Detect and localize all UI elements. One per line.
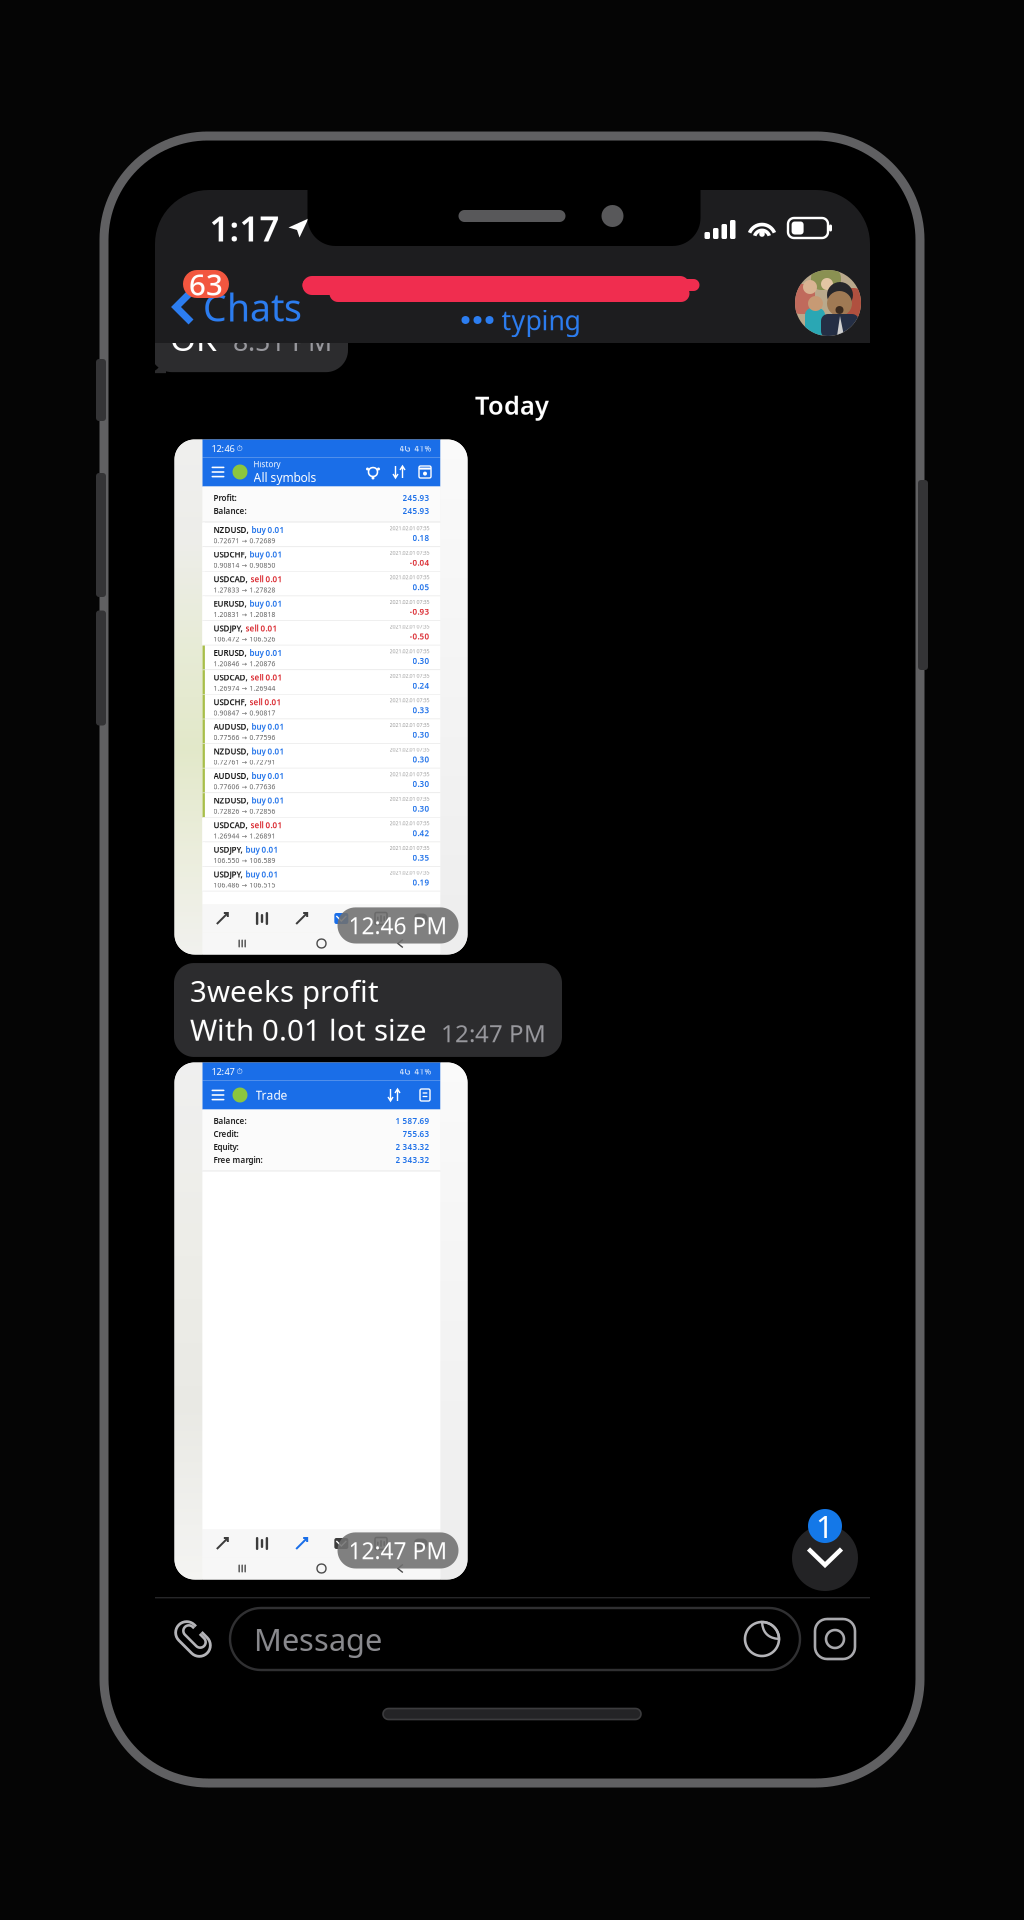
staticText: 12:46 [211, 442, 234, 455]
staticText: 2021.02.01 07:35 [389, 525, 429, 532]
staticText: -0.04 [409, 557, 429, 568]
staticText: 2021.02.01 07:35 [389, 746, 429, 753]
button[interactable]: Scroll to latest message [790, 1497, 860, 1587]
staticText: USDJPY, [213, 844, 242, 855]
staticText: 1.20831 → 1.20818 [213, 610, 275, 619]
staticText: 12:46 PM [348, 910, 447, 940]
staticText: 0.24 [412, 680, 429, 691]
staticText: 2021.02.01 07:35 [389, 697, 429, 704]
staticText: sell 0.01 [250, 574, 282, 584]
staticText: Message [254, 1619, 382, 1659]
staticText: 0.30 [412, 656, 429, 666]
staticText: Free margin: [213, 1155, 262, 1165]
staticText: 2 343.32 [395, 1155, 429, 1165]
staticText: Trade [255, 1087, 287, 1103]
staticText: 0.35 [412, 852, 429, 863]
staticText: 106.550 → 106.589 [213, 856, 275, 865]
staticText: 1.20846 → 1.20876 [213, 659, 275, 668]
staticText: 0.30 [412, 779, 429, 789]
staticText: USDCAD, [213, 574, 247, 584]
staticText: 12:47 [211, 1065, 234, 1078]
button[interactable]: Message [230, 1608, 800, 1670]
staticText: 0.72761 → 0.72791 [213, 758, 275, 766]
staticText: Equity: [213, 1142, 238, 1152]
staticText: AUDUSD, [213, 721, 248, 732]
staticText: buy 0.01 [251, 746, 284, 757]
staticText: OK [170, 316, 217, 360]
staticText: Profit: [213, 493, 236, 503]
staticText: buy 0.01 [249, 648, 282, 658]
staticText: With 0.01 lot size [190, 1010, 427, 1049]
staticText: USDCAD, [213, 672, 247, 683]
staticText: 1.26974 → 1.26944 [213, 684, 275, 693]
staticText: sell 0.01 [245, 623, 277, 634]
staticText: 2021.02.01 07:35 [389, 771, 429, 778]
staticText: 0.30 [412, 803, 429, 814]
staticText: NZDUSD, [213, 525, 248, 535]
staticText: 4G 41% [399, 443, 431, 454]
staticText: USDCAD, [213, 820, 247, 830]
staticText: 245.93 [402, 493, 429, 503]
staticText: NZDUSD, [213, 746, 248, 757]
staticText: EURUSD, [213, 598, 246, 609]
staticText: 2 343.32 [395, 1142, 429, 1152]
staticText: 0.72826 → 0.72856 [213, 807, 275, 816]
staticText: buy 0.01 [251, 525, 284, 535]
staticText: 1 [816, 1506, 834, 1546]
staticText: 12:47 PM [348, 1535, 447, 1565]
staticText: 245.93 [402, 506, 429, 516]
button[interactable]: Attach file [170, 1616, 216, 1662]
staticText: 106.486 → 106.515 [213, 881, 275, 889]
staticText: 0.72671 → 0.72689 [213, 536, 275, 545]
staticText: 8:51 PM [233, 323, 332, 358]
staticText: 0.19 [412, 877, 429, 888]
staticText: 1.27833 → 1.27828 [213, 585, 275, 594]
staticText: 2021.02.01 07:35 [389, 648, 429, 655]
staticText: 2021.02.01 07:35 [389, 795, 429, 802]
staticText: 2021.02.01 07:35 [389, 623, 429, 630]
staticText: 2021.02.01 07:35 [389, 574, 429, 581]
staticText: 2021.02.01 07:35 [389, 672, 429, 679]
staticText: Chats [203, 282, 302, 332]
staticText: 3weeks profit [190, 971, 379, 1010]
staticText: All symbols [253, 469, 316, 485]
staticText: 4G 41% [399, 1066, 431, 1077]
staticText: 1 587.69 [395, 1116, 429, 1126]
staticText: sell 0.01 [250, 820, 282, 830]
staticText: 0.77566 → 0.77596 [213, 733, 275, 742]
button[interactable]: Chats [172, 274, 302, 340]
staticText: buy 0.01 [251, 721, 284, 732]
staticText: -0.93 [409, 606, 429, 617]
button[interactable]: Chat profile [795, 270, 861, 336]
staticText: typing [501, 302, 580, 338]
staticText: EURUSD, [213, 648, 246, 658]
staticText: 106.472 → 106.526 [213, 635, 275, 643]
staticText: 1:17 [209, 205, 279, 251]
staticText: buy 0.01 [245, 869, 278, 880]
staticText: 0.33 [412, 705, 429, 715]
staticText: buy 0.01 [245, 844, 278, 855]
staticText: buy 0.01 [251, 771, 284, 781]
staticText: 755.63 [402, 1129, 429, 1139]
staticText: sell 0.01 [249, 697, 281, 707]
staticText: 2021.02.01 07:35 [389, 844, 429, 851]
staticText: 2021.02.01 07:35 [389, 598, 429, 605]
staticText: 0.05 [412, 582, 429, 592]
staticText: buy 0.01 [251, 795, 284, 806]
staticText: History [253, 459, 280, 469]
staticText: 0.42 [412, 828, 429, 838]
staticText: Today [475, 388, 549, 422]
staticText: 2021.02.01 07:35 [389, 820, 429, 827]
staticText: buy 0.01 [249, 598, 282, 609]
staticText: 0.90814 → 0.90850 [213, 561, 275, 570]
staticText: sell 0.01 [250, 672, 282, 683]
staticText: -0.50 [409, 631, 429, 642]
staticText: 2021.02.01 07:35 [389, 549, 429, 556]
staticText: 0.90847 → 0.90817 [213, 708, 275, 717]
staticText: Balance: [213, 506, 246, 516]
staticText: 2021.02.01 07:35 [389, 869, 429, 876]
button[interactable]: Open camera [812, 1616, 858, 1662]
staticText: NZDUSD, [213, 795, 248, 806]
staticText: 2021.02.01 07:35 [389, 721, 429, 728]
staticText: USDJPY, [213, 623, 242, 634]
